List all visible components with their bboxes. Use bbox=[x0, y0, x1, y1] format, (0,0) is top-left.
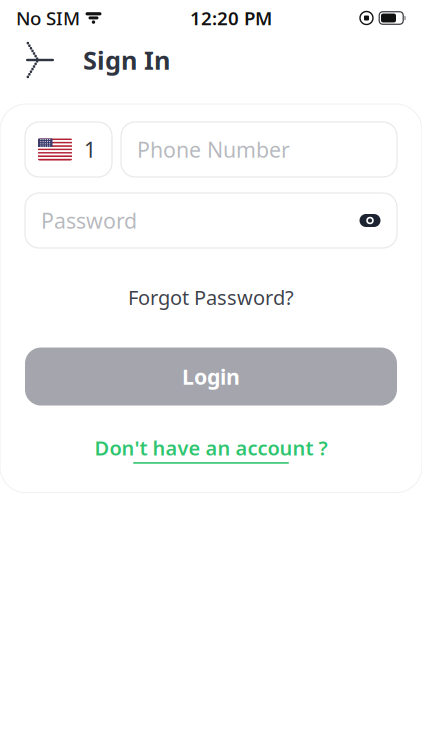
staticText: Login bbox=[182, 362, 240, 391]
staticText: Forgot Password? bbox=[128, 284, 294, 311]
button[interactable]: Don't have an account ? bbox=[84, 428, 337, 471]
button[interactable]: Login bbox=[25, 348, 397, 406]
staticText: Sign In bbox=[83, 43, 170, 77]
staticText: Password bbox=[41, 206, 137, 235]
button[interactable]: Phone Number bbox=[121, 122, 397, 177]
button[interactable]: Forgot Password? bbox=[118, 276, 304, 319]
staticText: No SIM bbox=[16, 6, 80, 30]
button[interactable]: Password bbox=[25, 193, 397, 248]
staticText: 1 bbox=[84, 135, 96, 164]
button[interactable]: Back bbox=[14, 40, 68, 80]
staticText: Phone Number bbox=[137, 135, 290, 164]
staticText: 12:20 PM bbox=[190, 6, 272, 30]
button[interactable]: Select country code bbox=[25, 122, 112, 177]
staticText: Don't have an account ? bbox=[94, 435, 327, 461]
